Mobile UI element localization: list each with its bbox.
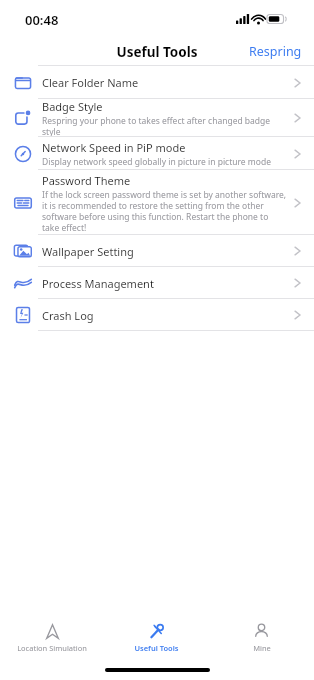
staticText: 00:48 bbox=[25, 11, 59, 29]
button[interactable]: Wallpaper Setting bbox=[0, 235, 314, 267]
staticText: Useful Tools bbox=[116, 43, 198, 61]
button[interactable]: Mine bbox=[209, 620, 314, 664]
button[interactable]: Clear Folder Name bbox=[0, 66, 314, 99]
staticText: Network Speed in PiP mode bbox=[42, 140, 186, 155]
button[interactable]: Location Simulation bbox=[0, 620, 104, 664]
staticText: If the lock screen password theme is set… bbox=[42, 189, 287, 233]
staticText: Mine bbox=[253, 643, 271, 653]
button[interactable]: Badge Style bbox=[0, 99, 314, 137]
button[interactable]: Process Management bbox=[0, 267, 314, 299]
button[interactable]: Useful Tools bbox=[104, 620, 209, 664]
button[interactable]: Password Theme bbox=[0, 170, 314, 235]
button[interactable]: Respring bbox=[237, 37, 314, 66]
button[interactable]: Network Speed in PiP mode bbox=[0, 137, 314, 170]
staticText: Clear Folder Name bbox=[42, 75, 139, 90]
staticText: Process Management bbox=[42, 276, 154, 291]
staticText: Location Simulation bbox=[17, 643, 87, 653]
staticText: Badge Style bbox=[42, 99, 103, 114]
staticText: Respring bbox=[249, 43, 302, 60]
staticText: Useful Tools bbox=[134, 643, 179, 653]
button[interactable]: Crash Log bbox=[0, 299, 314, 331]
staticText: Wallpaper Setting bbox=[42, 244, 134, 259]
staticText: Display network speed globally in pictur… bbox=[42, 156, 271, 168]
staticText: Password Theme bbox=[42, 173, 131, 188]
staticText: Crash Log bbox=[42, 308, 94, 323]
staticText: Respring your phone to takes effect afte… bbox=[42, 115, 287, 137]
